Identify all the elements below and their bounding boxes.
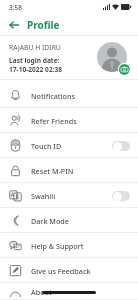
button[interactable]: RAJABU H IDIRU — [0, 36, 138, 80]
staticText: Notifications — [31, 91, 75, 101]
button[interactable]: Dark Mode — [0, 208, 138, 233]
staticText: Refer Friends — [31, 116, 77, 126]
button[interactable]: Notifications — [0, 83, 138, 108]
button[interactable]: Touch ID — [0, 133, 138, 158]
button[interactable]: Help & Support — [0, 233, 138, 258]
button[interactable]: Give us Feedback — [0, 258, 138, 283]
staticText: Reset M-PIN — [31, 166, 74, 176]
staticText: Swahili — [31, 191, 56, 201]
button[interactable]: Swahili toggle — [112, 191, 130, 201]
button[interactable]: Swahili — [0, 183, 138, 208]
button[interactable]: Change profile photo — [97, 42, 130, 75]
staticText: 3:58 — [9, 3, 22, 12]
staticText: Touch ID — [31, 141, 62, 151]
staticText: Give us Feedback — [31, 266, 91, 276]
button[interactable]: Touch ID toggle — [112, 141, 130, 151]
staticText: About — [31, 287, 52, 297]
button[interactable]: Back — [7, 18, 21, 32]
button[interactable]: About — [0, 283, 138, 300]
staticText: Dark Mode — [31, 216, 69, 226]
staticText: Profile — [27, 18, 60, 32]
staticText: Help & Support — [31, 241, 84, 251]
staticText: Last login date: 17-10-2022 02:38 — [9, 56, 90, 74]
button[interactable]: Reset M-PIN — [0, 158, 138, 183]
button[interactable]: Refer Friends — [0, 108, 138, 133]
staticText: RAJABU H IDIRU — [9, 43, 61, 52]
